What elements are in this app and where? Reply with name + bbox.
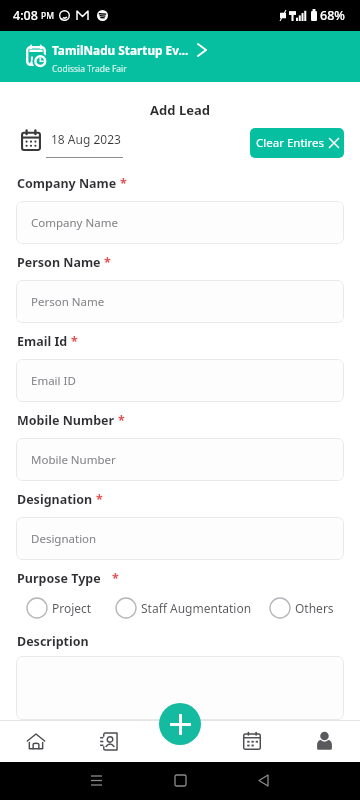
button[interactable]: Contacts [99,732,118,751]
staticText: Email ID [31,373,76,389]
button[interactable]: Email ID [16,359,344,402]
staticText: Mobile Number [17,412,115,429]
staticText: 18 Aug 2023 [51,131,121,147]
staticText: * [71,333,78,350]
staticText: Designation [31,531,97,547]
button[interactable]: Others [269,597,334,619]
button[interactable]: Clear Entires [250,128,344,158]
staticText: * [118,412,125,429]
staticText: Company Name [31,215,118,231]
staticText: Staff Augmentation [141,600,252,616]
staticText: Company Name [17,175,117,192]
staticText: Mobile Number [31,452,116,468]
staticText: Person Name [31,294,105,310]
staticText: Purpose Type [17,570,101,587]
button[interactable]: Company Name [16,201,344,244]
button[interactable]: Home [27,732,45,750]
button[interactable]: 18 Aug 2023 [20,130,126,160]
staticText: Person Name [17,254,101,271]
staticText: Others [295,600,334,616]
staticText: Codissia Trade Fair [52,63,127,75]
button[interactable]: Project [26,597,92,619]
button[interactable]: Profile [315,731,334,750]
staticText: Email Id [17,333,68,350]
staticText: * [112,570,119,587]
staticText: * [96,491,103,508]
staticText: 68% [320,7,345,24]
button[interactable] [16,656,344,720]
button[interactable]: Open event [191,39,213,61]
button[interactable]: Mobile Number [16,438,344,481]
staticText: Description [17,633,89,650]
button[interactable]: Staff Augmentation [115,597,252,619]
button[interactable]: Calendar [243,732,261,750]
button[interactable]: Home [168,768,193,793]
staticText: PM [41,10,54,22]
staticText: Designation [17,491,93,508]
staticText: Add Lead [0,101,360,119]
staticText: Clear Entires [256,135,325,151]
button[interactable]: Person Name [16,280,344,323]
staticText: * [104,254,111,271]
staticText: 4:08 [13,7,38,24]
button[interactable]: Add lead [159,703,201,745]
button[interactable]: Designation [16,517,344,560]
button[interactable]: Back [251,768,276,793]
staticText: * [120,175,127,192]
staticText: TamilNadu Startup Ev... [52,42,189,58]
button[interactable]: Recents [84,768,109,793]
staticText: Project [52,600,92,616]
